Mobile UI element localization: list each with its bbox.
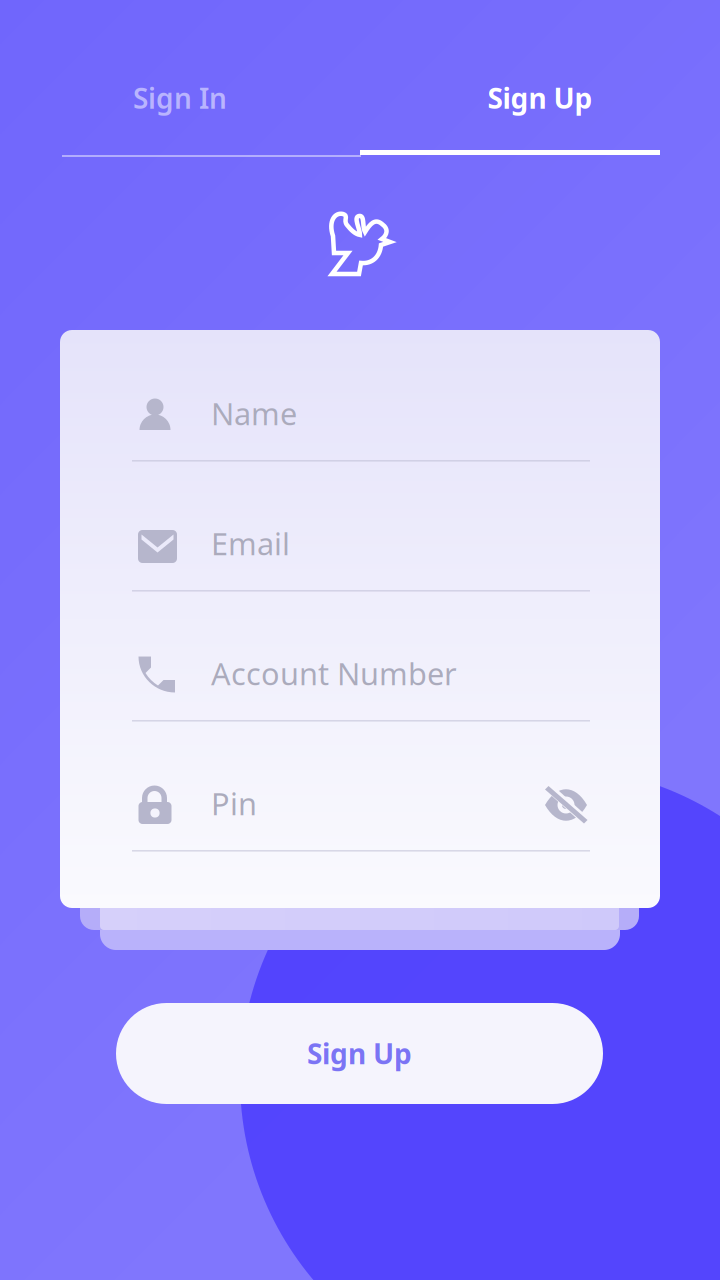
button[interactable]: Sign Up bbox=[390, 69, 690, 127]
staticText: Name bbox=[211, 393, 297, 434]
button[interactable]: Sign Up bbox=[116, 1003, 603, 1104]
staticText: Email bbox=[211, 523, 290, 564]
staticText: Sign Up bbox=[307, 1035, 412, 1072]
staticText: Pin bbox=[211, 783, 257, 824]
button[interactable]: Sign In bbox=[31, 69, 329, 127]
staticText: Sign In bbox=[133, 79, 227, 117]
staticText: Sign Up bbox=[487, 79, 592, 117]
button[interactable]: Show PIN bbox=[544, 786, 588, 824]
staticText: Account Number bbox=[211, 653, 457, 694]
